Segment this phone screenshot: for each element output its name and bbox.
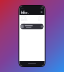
button[interactable]: Account <box>40 11 43 14</box>
staticText: Recently Added <box>21 11 29 25</box>
staticText: 9:41 <box>21 7 24 9</box>
staticText: Hi <box>21 9 25 15</box>
button[interactable] <box>21 24 43 29</box>
